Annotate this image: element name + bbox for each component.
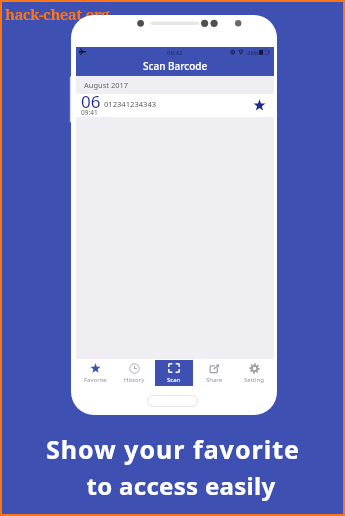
other: Favorite [253,99,266,112]
staticText: Setting [244,376,264,384]
staticText: August 2017 [84,80,129,90]
button[interactable]: Share [195,360,233,386]
staticText: Share [206,376,223,384]
staticText: Favorite [84,376,107,384]
staticText: 09:41 [81,108,98,117]
staticText: Scan Barcode [143,59,208,73]
staticText: hack-cheat.org [5,4,110,24]
staticText: 012341234343 [104,99,157,109]
staticText: 26% [247,49,259,57]
button[interactable]: Favorite [77,360,114,386]
staticText: to access easily [86,469,276,502]
staticText: 09:42 [167,49,183,57]
button[interactable]: 06 [76,94,274,117]
staticText: Scan [167,376,181,384]
button[interactable]: Scan [155,360,193,386]
button[interactable]: Setting [235,360,273,386]
button[interactable]: History [116,360,153,386]
staticText: Show your favorite [46,432,300,466]
staticText: 06 [81,90,101,113]
staticText: History [124,376,145,384]
